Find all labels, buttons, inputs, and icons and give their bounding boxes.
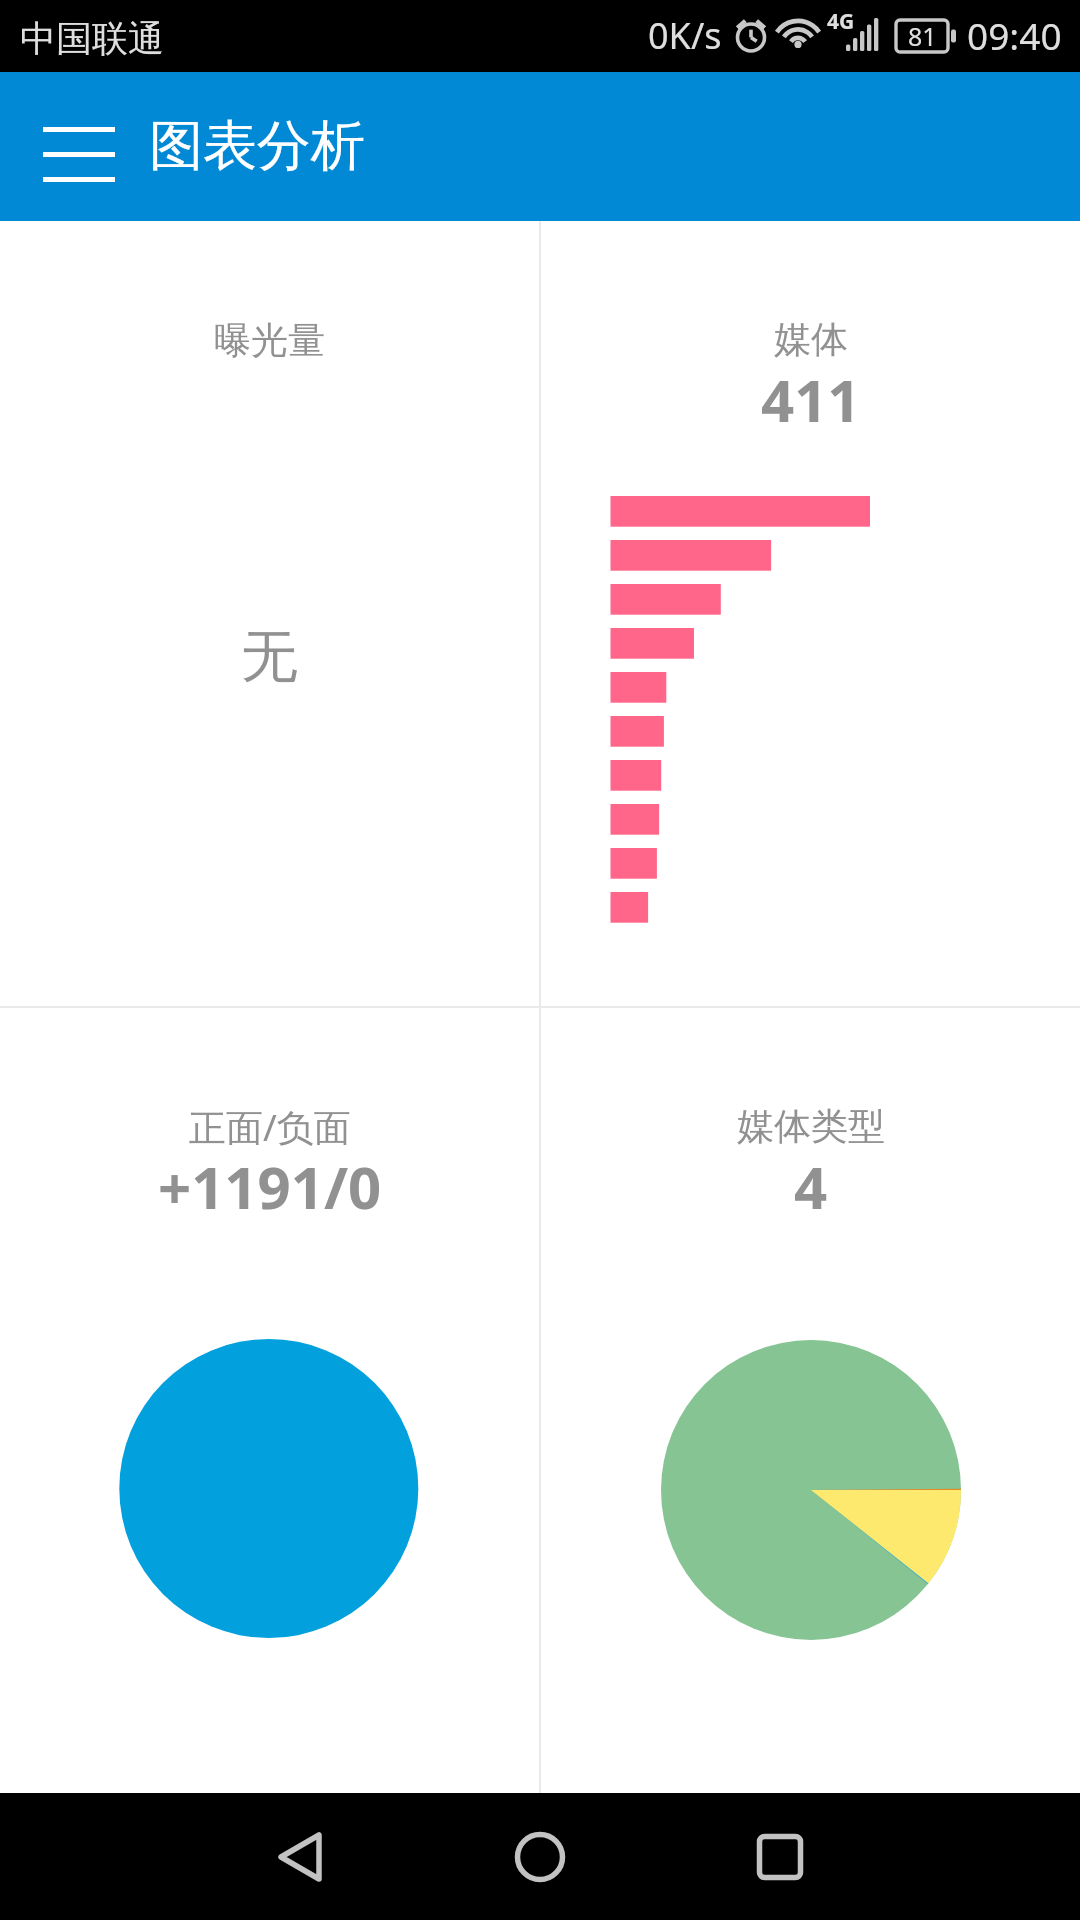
staticText: 4	[794, 1147, 828, 1226]
button[interactable]: 媒体类型	[541, 1008, 1080, 1793]
staticText: +1191/0	[158, 1147, 382, 1226]
staticText: 4G	[827, 7, 855, 36]
staticText: 媒体	[774, 316, 848, 363]
staticText: 图表分析	[149, 112, 365, 180]
button[interactable]: Recents	[710, 1793, 850, 1920]
staticText: 无	[241, 621, 298, 693]
staticText: 媒体类型	[737, 1103, 885, 1150]
staticText: 09:40	[967, 10, 1062, 60]
staticText: 正面/负面	[189, 1101, 351, 1152]
button[interactable]: 媒体	[541, 221, 1080, 1006]
button[interactable]: Menu	[21, 101, 137, 193]
button[interactable]: Back	[230, 1793, 370, 1920]
staticText: 中国联通	[20, 16, 164, 61]
staticText: 曝光量	[214, 317, 325, 364]
staticText: 81	[908, 19, 937, 51]
button[interactable]: 正面/负面	[0, 1008, 539, 1793]
staticText: 411	[761, 360, 861, 439]
button[interactable]: Home	[470, 1793, 610, 1920]
staticText: 0K/s	[648, 11, 722, 60]
button[interactable]: 曝光量	[0, 221, 539, 1006]
